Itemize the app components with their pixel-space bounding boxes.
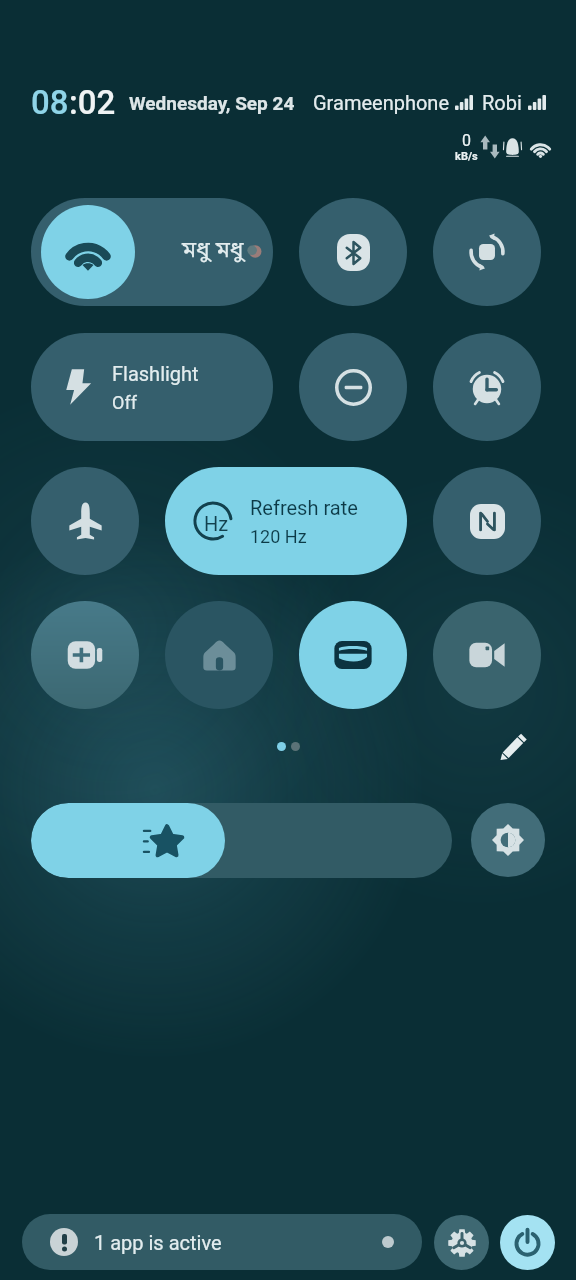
button[interactable]: Screen record bbox=[433, 601, 541, 709]
button[interactable]: Power bbox=[500, 1215, 555, 1270]
staticText: 120 Hz bbox=[250, 526, 307, 547]
button[interactable]: Battery saver bbox=[31, 601, 139, 709]
button[interactable]: Airplane mode bbox=[31, 467, 139, 575]
button[interactable]: Refresh rate 120 Hz bbox=[165, 467, 407, 575]
staticText: Grameenphone bbox=[313, 91, 449, 114]
button[interactable]: NFC bbox=[433, 467, 541, 575]
staticText: Wednesday, Sep 24 bbox=[129, 92, 295, 114]
staticText: :02 bbox=[69, 83, 116, 122]
staticText: kB/s bbox=[455, 150, 478, 163]
staticText: Robi bbox=[482, 91, 522, 114]
button[interactable]: 1 app is active bbox=[22, 1214, 422, 1270]
button[interactable]: Do not disturb bbox=[299, 333, 407, 441]
button[interactable]: Flashlight Off bbox=[31, 333, 273, 441]
button[interactable]: Home bbox=[165, 601, 273, 709]
button[interactable]: Settings bbox=[434, 1215, 489, 1270]
staticText: 0 bbox=[462, 131, 471, 150]
staticText: Flashlight bbox=[112, 362, 199, 385]
button[interactable]: Bluetooth bbox=[299, 198, 407, 306]
button[interactable]: Wallet bbox=[299, 601, 407, 709]
staticText: মধু মধু bbox=[182, 236, 244, 266]
staticText: Hz bbox=[204, 512, 229, 535]
staticText: Refresh rate bbox=[250, 496, 358, 519]
button[interactable]: Auto-rotate bbox=[433, 198, 541, 306]
button[interactable]: Edit tiles bbox=[494, 727, 532, 765]
button[interactable]: Alarm bbox=[433, 333, 541, 441]
button[interactable]: Brightness bbox=[31, 803, 452, 878]
staticText: 1 app is active bbox=[94, 1231, 222, 1254]
button[interactable]: Wi-Fi bbox=[31, 198, 273, 306]
staticText: 08 bbox=[31, 83, 69, 122]
button[interactable]: Brightness settings bbox=[471, 803, 545, 877]
staticText: Off bbox=[112, 392, 137, 413]
